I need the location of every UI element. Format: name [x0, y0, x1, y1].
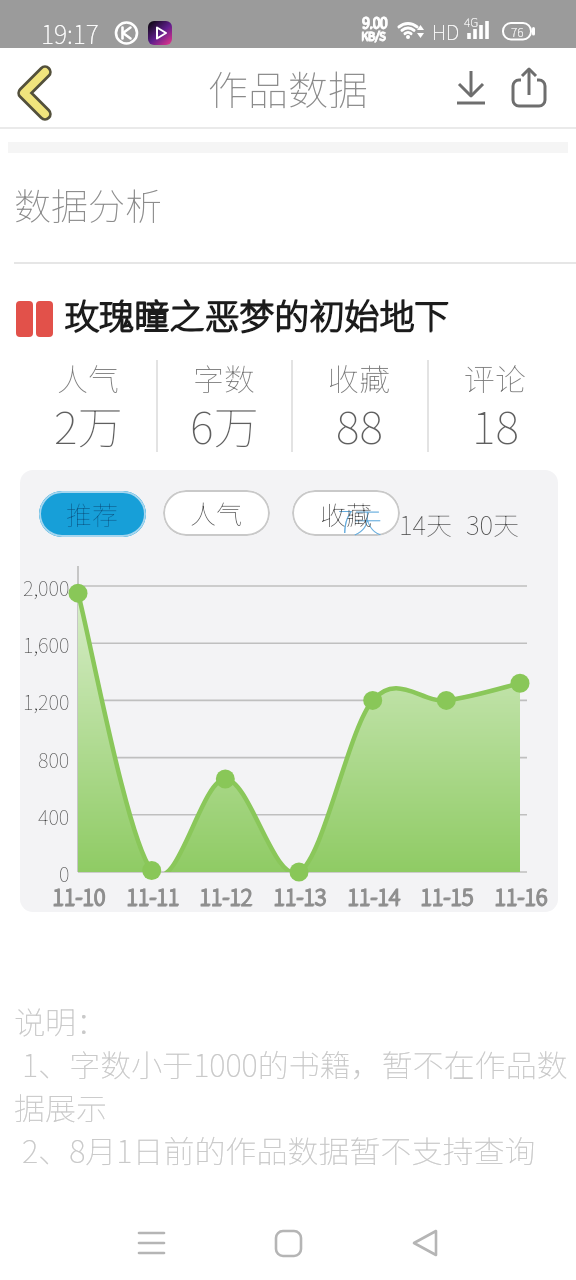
staticText: 数据分析: [14, 177, 162, 231]
staticText: KB/S: [361, 27, 386, 43]
button[interactable]: 人气: [20, 358, 156, 454]
staticText: 11-12: [199, 879, 252, 911]
staticText: 11-14: [348, 879, 401, 911]
staticText: 9.00: [362, 12, 388, 32]
staticText: 11-12: [199, 880, 252, 912]
staticText: 作品数据: [208, 59, 368, 117]
staticText: 88: [336, 392, 383, 457]
button[interactable]: 评论: [427, 358, 563, 454]
button[interactable]: [264, 1219, 314, 1269]
staticText: 11-12: [200, 879, 253, 911]
button[interactable]: [8, 58, 64, 118]
button[interactable]: 人气: [163, 490, 270, 536]
staticText: 7天: [338, 499, 383, 541]
staticText: 18: [472, 392, 519, 457]
button[interactable]: [292, 490, 400, 536]
staticText: 11-14: [347, 879, 400, 911]
button[interactable]: 推荐: [39, 491, 146, 537]
staticText: 11-11: [126, 880, 179, 912]
button[interactable]: [401, 1219, 451, 1269]
staticText: 11-13: [274, 879, 327, 911]
staticText: 据展示: [14, 1084, 107, 1129]
staticText: KB/S: [362, 27, 387, 43]
staticText: 11-11: [126, 879, 179, 911]
staticText: 6万: [190, 392, 259, 457]
staticText: 30天: [466, 505, 520, 543]
staticText: 人气: [57, 355, 119, 400]
button[interactable]: 收藏: [291, 358, 427, 454]
button[interactable]: [505, 62, 553, 114]
button[interactable]: [448, 62, 494, 114]
staticText: 1、字数小于1000的书籍，暂不在作品数: [22, 1041, 568, 1086]
staticText: 0: [59, 859, 70, 888]
staticText: 11-10: [52, 880, 105, 912]
staticText: 11-15: [420, 880, 473, 912]
staticText: 1,600: [23, 630, 70, 659]
staticText: 11-16: [494, 879, 547, 911]
staticText: 评论: [464, 355, 526, 400]
staticText: 800: [38, 745, 70, 774]
staticText: 2,000: [23, 573, 70, 602]
staticText: 11-16: [495, 879, 548, 911]
staticText: 收藏: [320, 495, 373, 533]
button[interactable]: [127, 1219, 177, 1269]
staticText: 11-13: [273, 880, 326, 912]
staticText: 11-15: [420, 879, 473, 911]
staticText: 11-11: [127, 879, 180, 911]
staticText: 9.00: [362, 13, 388, 33]
staticText: 收藏: [328, 355, 390, 400]
button[interactable]: 字数: [156, 358, 292, 454]
staticText: 76: [511, 23, 524, 40]
staticText: 19:17: [41, 15, 99, 51]
staticText: 11-10: [53, 879, 106, 911]
staticText: 说明：: [14, 998, 107, 1043]
staticText: 11-14: [347, 880, 400, 912]
staticText: 推荐: [66, 495, 119, 533]
staticText: 2万: [54, 392, 123, 457]
staticText: 400: [38, 802, 70, 831]
staticText: 2、8月1日前的作品数据暂不支持查询: [22, 1127, 536, 1172]
staticText: 11-15: [421, 879, 474, 911]
staticText: 字数: [193, 355, 255, 400]
staticText: 9.00: [363, 12, 389, 32]
staticText: 11-16: [494, 880, 547, 912]
staticText: 4G: [464, 13, 479, 30]
staticText: 玫瑰瞳之恶梦的初始地下: [65, 288, 451, 339]
staticText: 11-13: [273, 879, 326, 911]
staticText: 1,200: [23, 687, 70, 716]
staticText: 11-10: [52, 879, 105, 911]
staticText: HD: [432, 17, 460, 46]
staticText: 14天: [399, 505, 453, 543]
staticText: 玫瑰瞳之恶梦的初始地下: [64, 288, 450, 339]
staticText: 人气: [190, 494, 243, 532]
staticText: 玫瑰瞳之恶梦的初始地下: [64, 289, 450, 340]
staticText: KB/S: [361, 28, 386, 44]
